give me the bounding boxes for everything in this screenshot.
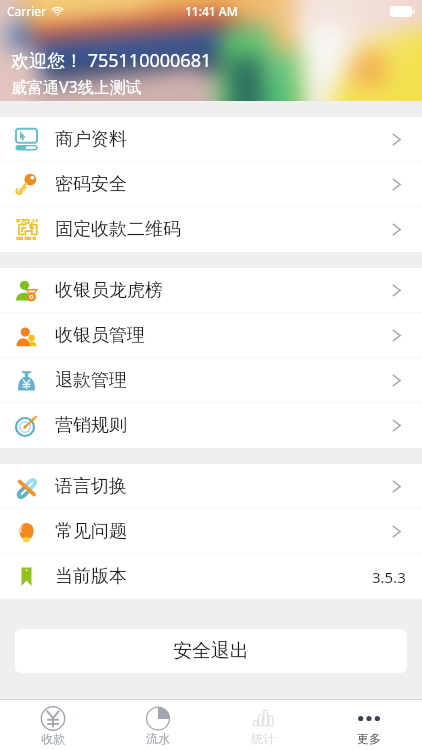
button[interactable]: 统计 [210,700,316,750]
other: 统计 [250,706,276,731]
button[interactable]: 商户资料 [0,117,422,162]
staticText: 固定收款二维码 [55,218,181,241]
button[interactable]: 营销规则 [0,403,422,448]
other: 收款 [40,706,66,731]
staticText: 欢迎您！ 755110000681 [11,48,212,73]
staticText: 常见问题 [55,520,127,543]
staticText: 3.5.3 [372,567,406,587]
staticText: 更多 [357,731,381,746]
staticText: 收银员管理 [55,324,145,347]
button[interactable]: 更多 [316,700,422,750]
staticText: 商户资料 [55,128,127,151]
staticText: 威富通V3线上测试 [11,76,142,98]
staticText: Carrier [7,3,47,19]
button[interactable]: 收款 [0,700,105,750]
other: 更多 [356,706,382,731]
other: 流水 [145,706,171,731]
staticText: 统计 [251,731,275,746]
button[interactable]: 固定收款二维码 [0,207,422,252]
staticText: 11:41 AM [185,3,238,19]
staticText: 退款管理 [55,369,127,392]
staticText: 收款 [41,731,65,746]
button[interactable]: 流水 [105,700,210,750]
staticText: 流水 [146,731,170,746]
staticText: 营销规则 [55,414,127,437]
button[interactable]: 当前版本 [0,554,422,599]
button[interactable]: 收银员龙虎榜 [0,268,422,313]
button[interactable]: 常见问题 [0,509,422,554]
staticText: 语言切换 [55,475,127,498]
button[interactable]: 安全退出 [15,629,407,673]
button[interactable]: 收银员管理 [0,313,422,358]
staticText: 安全退出 [173,639,249,663]
button[interactable]: 语言切换 [0,464,422,509]
staticText: 收银员龙虎榜 [55,279,163,302]
button[interactable]: 退款管理 [0,358,422,403]
staticText: 当前版本 [55,565,127,588]
button[interactable]: 密码安全 [0,162,422,207]
staticText: 密码安全 [55,173,127,196]
